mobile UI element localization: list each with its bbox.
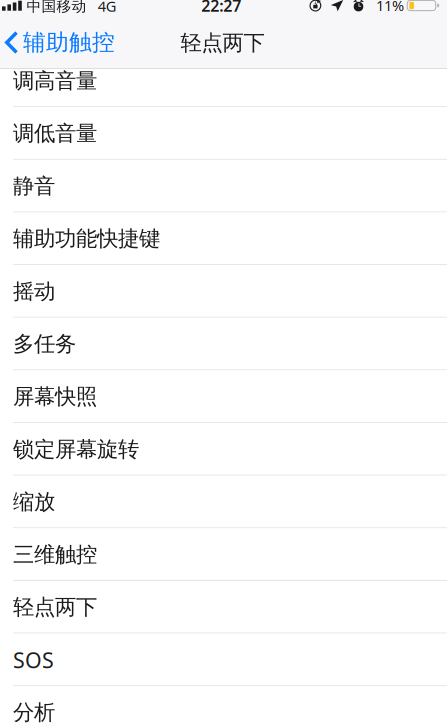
- staticText: 静音: [13, 173, 55, 199]
- staticText: 中国移动: [26, 0, 86, 15]
- staticText: 缩放: [13, 489, 55, 515]
- staticText: 三维触控: [13, 541, 97, 568]
- button[interactable]: 摇动: [0, 265, 447, 318]
- button[interactable]: 缩放: [0, 476, 447, 528]
- button[interactable]: 静音: [0, 160, 447, 212]
- button[interactable]: 分析: [0, 686, 447, 723]
- button[interactable]: 调高音量: [0, 55, 447, 107]
- staticText: 辅助功能快捷键: [13, 226, 160, 252]
- staticText: 11%: [376, 0, 404, 15]
- button[interactable]: 屏幕快照: [0, 370, 447, 423]
- staticText: 22:27: [201, 0, 241, 16]
- button[interactable]: 辅助功能快捷键: [0, 212, 447, 265]
- staticText: 调低音量: [13, 120, 97, 147]
- staticText: 锁定屏幕旋转: [13, 436, 139, 462]
- staticText: 多任务: [13, 331, 76, 357]
- button[interactable]: SOS: [0, 634, 447, 686]
- staticText: 辅助触控: [23, 29, 115, 56]
- staticText: 轻点两下: [180, 30, 264, 56]
- button[interactable]: 三维触控: [0, 528, 447, 581]
- button[interactable]: 轻点两下: [0, 581, 447, 634]
- button[interactable]: 调低音量: [0, 107, 447, 160]
- button[interactable]: 锁定屏幕旋转: [0, 423, 447, 476]
- button[interactable]: 辅助触控: [0, 16, 125, 68]
- staticText: 屏幕快照: [13, 384, 97, 410]
- staticText: 4G: [98, 0, 117, 16]
- staticText: 摇动: [13, 278, 55, 304]
- staticText: SOS: [13, 646, 54, 674]
- staticText: 轻点两下: [13, 594, 97, 620]
- button[interactable]: 多任务: [0, 318, 447, 370]
- staticText: 调高音量: [13, 68, 97, 94]
- staticText: 分析: [13, 699, 55, 723]
